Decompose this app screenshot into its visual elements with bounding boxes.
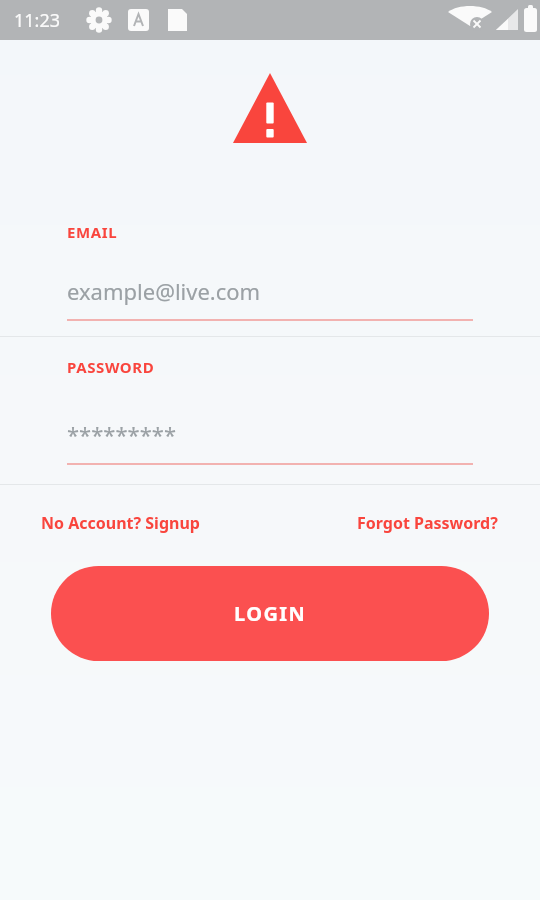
staticText: EMAIL (67, 222, 118, 242)
staticText: Forgot Password? (357, 512, 498, 534)
staticText: LOGIN (234, 600, 307, 627)
staticText: No Account? Signup (41, 512, 200, 534)
button[interactable]: Forgot Password? (357, 512, 498, 534)
button[interactable]: No Account? Signup (41, 512, 200, 534)
button[interactable]: LOGIN (51, 566, 489, 661)
staticText: 11:23 (14, 8, 61, 33)
other: Warning (233, 73, 307, 143)
staticText: PASSWORD (67, 357, 155, 377)
staticText: example@live.com (67, 276, 261, 306)
staticText: ********* (67, 419, 177, 449)
